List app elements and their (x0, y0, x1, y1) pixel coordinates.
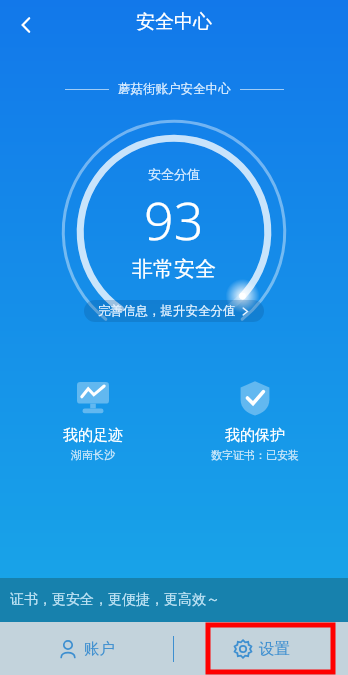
staticText: 我的足迹 (63, 426, 123, 445)
staticText: 安全分值 (148, 166, 200, 182)
button[interactable]: 证书，更安全，更便捷，更高效～ (0, 578, 348, 622)
staticText: 安全中心 (136, 10, 212, 34)
button[interactable]: 我的保护 (185, 376, 325, 464)
button[interactable]: Back (6, 5, 46, 45)
staticText: 数字证书：已安装 (211, 448, 299, 462)
staticText: 设置 (259, 639, 290, 659)
staticText: 蘑菇街账户安全中心 (118, 81, 231, 97)
button[interactable]: 完善信息，提升安全分值 (84, 300, 264, 322)
staticText: 证书，更安全，更便捷，更高效～ (10, 591, 220, 609)
staticText: 我的保护 (225, 426, 285, 445)
staticText: 完善信息，提升安全分值 (98, 303, 236, 319)
staticText: 账户 (84, 639, 115, 659)
staticText: 湖南长沙 (71, 448, 115, 462)
staticText: 非常安全 (132, 256, 216, 282)
button[interactable]: 我的足迹 (23, 376, 163, 464)
button[interactable]: 设置 (174, 622, 348, 675)
button[interactable]: 账户 (0, 622, 173, 675)
staticText: 93 (144, 184, 204, 255)
